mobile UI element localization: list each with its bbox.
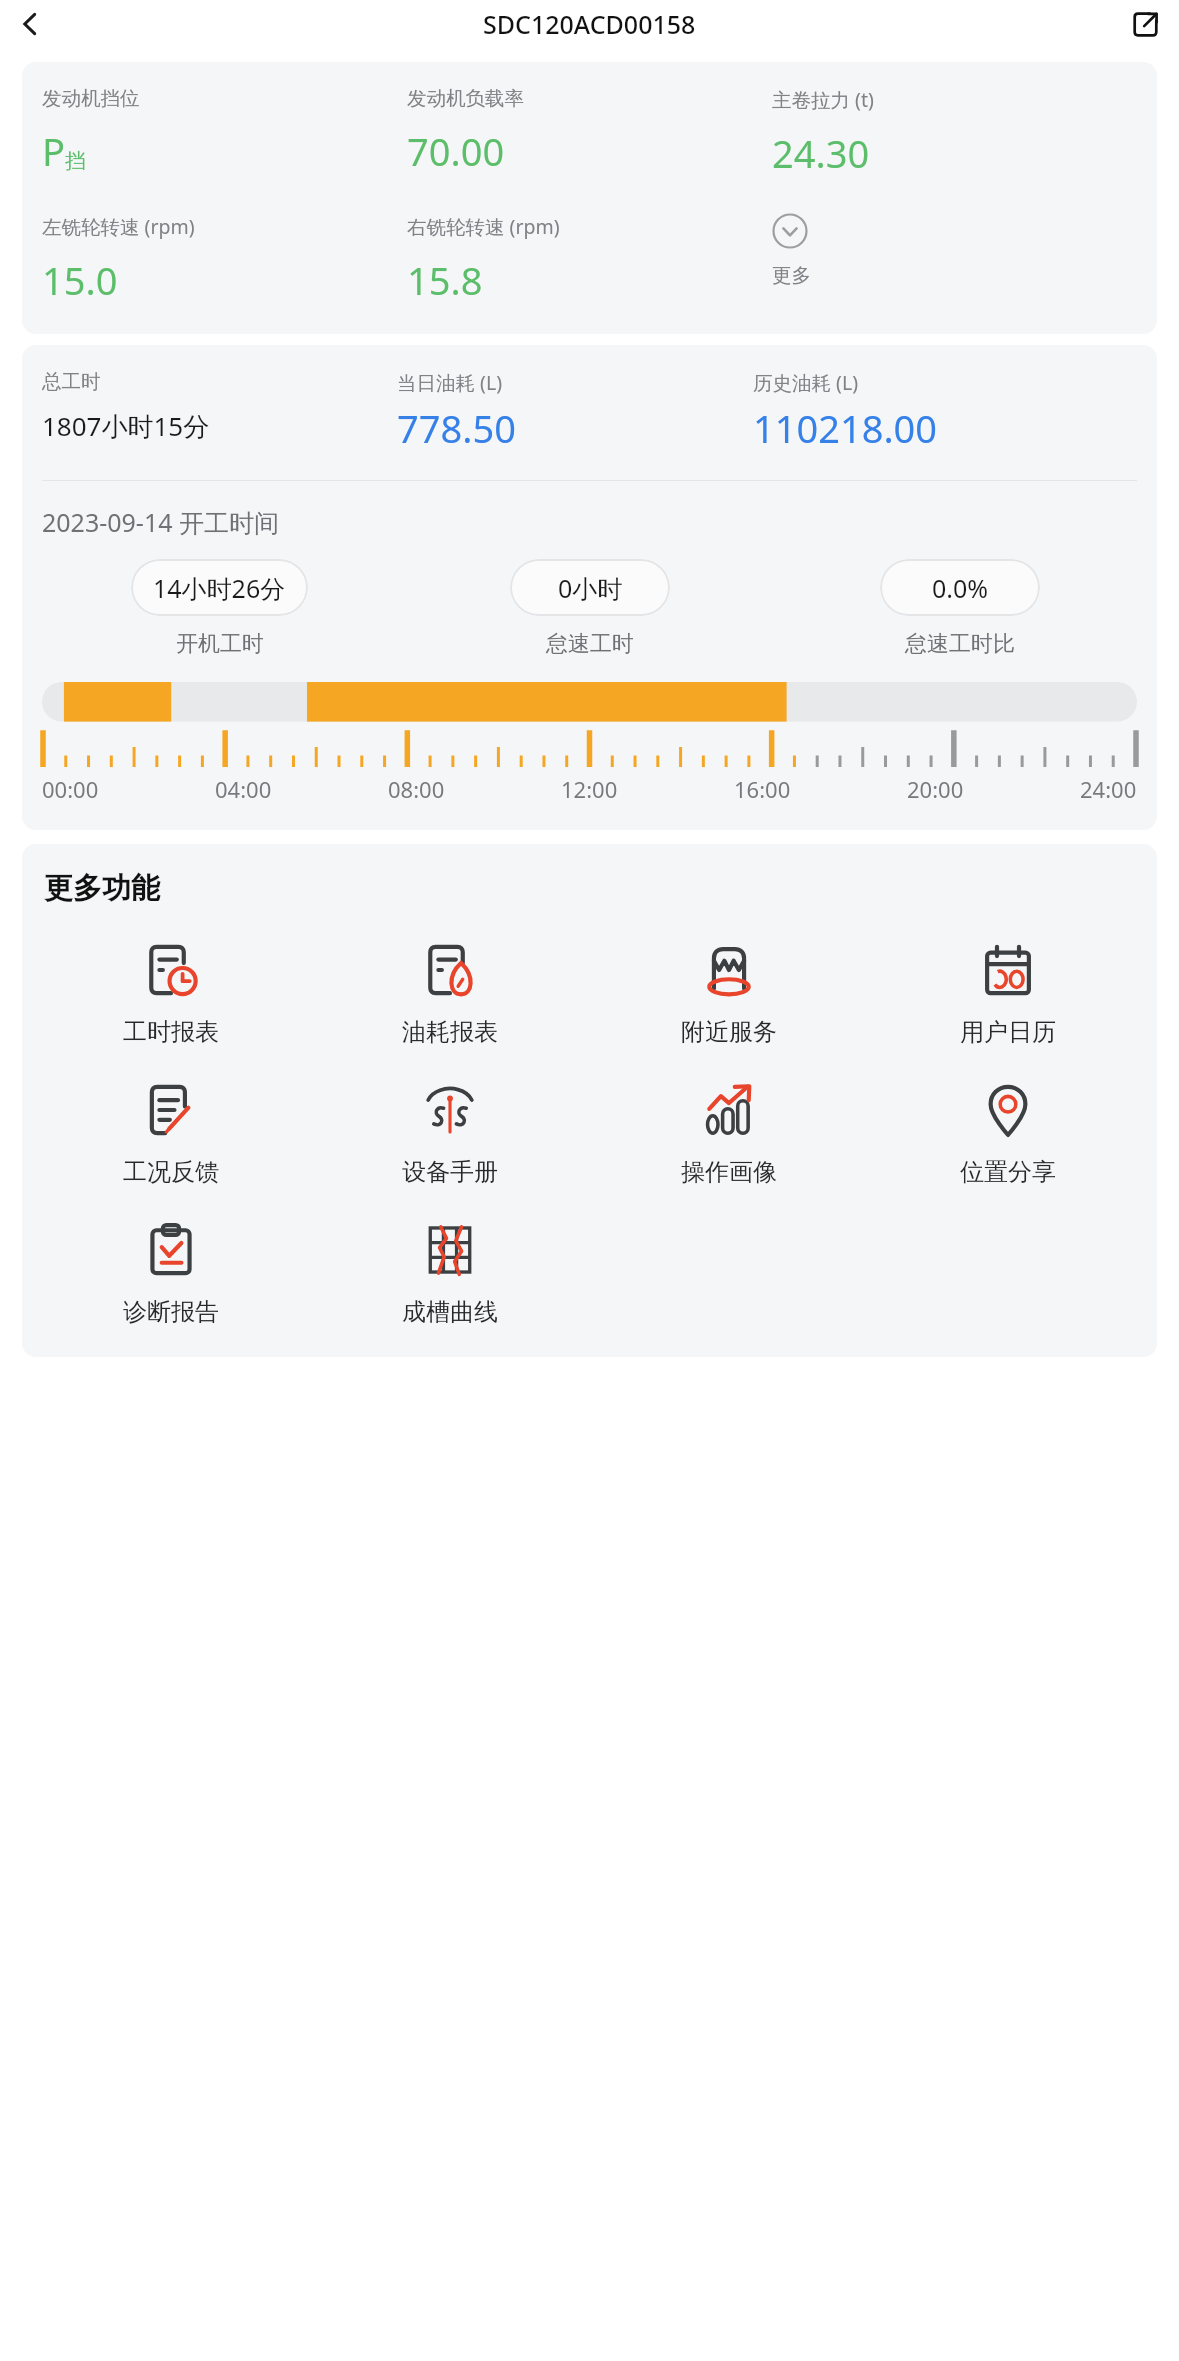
staticText: 08:00: [388, 774, 445, 804]
staticText: 16:00: [734, 774, 791, 804]
button[interactable]: Share: [1121, 0, 1169, 48]
staticText: 开机工时: [176, 630, 264, 658]
staticText: 工况反馈: [123, 1157, 219, 1187]
staticText: 04:00: [215, 774, 272, 804]
button[interactable]: Back: [6, 0, 54, 48]
staticText: 12:00: [561, 774, 618, 804]
staticText: 70.00: [407, 125, 505, 177]
staticText: 00:00: [42, 774, 99, 804]
staticText: 0小时: [558, 571, 623, 605]
staticText: 778.50: [397, 402, 516, 454]
button[interactable]: 更多: [772, 213, 1137, 288]
staticText: 油耗报表: [402, 1017, 498, 1047]
staticText: 24:00: [1080, 774, 1137, 804]
button[interactable]: 设备手册: [310, 1081, 589, 1187]
staticText: 右铣轮转速 (rpm): [407, 213, 560, 240]
button[interactable]: 14小时26分: [131, 559, 308, 616]
staticText: 左铣轮转速 (rpm): [42, 213, 195, 240]
staticText: 0.0%: [932, 571, 989, 605]
staticText: 110218.00: [753, 402, 938, 454]
staticText: 历史油耗 (L): [753, 369, 858, 396]
staticText: 用户日历: [960, 1017, 1056, 1047]
staticText: P: [42, 125, 65, 177]
button[interactable]: 0小时: [510, 559, 670, 616]
button[interactable]: 工时报表: [32, 941, 310, 1047]
staticText: 当日油耗 (L): [397, 369, 502, 396]
staticText: 1807小时15分: [42, 408, 210, 444]
staticText: 怠速工时: [546, 630, 634, 658]
staticText: 15.0: [42, 254, 118, 306]
staticText: 更多功能: [44, 870, 160, 907]
staticText: 工时报表: [123, 1017, 219, 1047]
staticText: 设备手册: [402, 1157, 498, 1187]
staticText: 位置分享: [960, 1157, 1056, 1187]
staticText: 主卷拉力 (t): [772, 86, 874, 113]
staticText: 挡: [65, 148, 86, 174]
staticText: 诊断报告: [123, 1297, 219, 1327]
button[interactable]: 0.0%: [880, 559, 1040, 616]
staticText: 2023-09-14 开工时间: [42, 505, 280, 539]
staticText: 怠速工时比: [905, 630, 1015, 658]
staticText: 发动机挡位: [42, 86, 140, 111]
button[interactable]: 用户日历: [868, 941, 1147, 1047]
staticText: 总工时: [42, 369, 101, 394]
staticText: 发动机负载率: [407, 86, 524, 111]
button[interactable]: 操作画像: [589, 1081, 868, 1187]
staticText: 操作画像: [681, 1157, 777, 1187]
staticText: 14小时26分: [153, 571, 286, 605]
staticText: SDC120ACD00158: [483, 7, 696, 41]
staticText: 24.30: [772, 127, 870, 179]
staticText: 附近服务: [681, 1017, 777, 1047]
staticText: 成槽曲线: [402, 1297, 498, 1327]
button[interactable]: 附近服务: [589, 941, 868, 1047]
staticText: 更多: [772, 263, 811, 288]
button[interactable]: 油耗报表: [310, 941, 589, 1047]
staticText: 15.8: [407, 254, 483, 306]
button[interactable]: 位置分享: [868, 1081, 1147, 1187]
button[interactable]: 工况反馈: [32, 1081, 310, 1187]
button[interactable]: 诊断报告: [32, 1221, 310, 1327]
staticText: 20:00: [907, 774, 964, 804]
button[interactable]: 成槽曲线: [310, 1221, 589, 1327]
